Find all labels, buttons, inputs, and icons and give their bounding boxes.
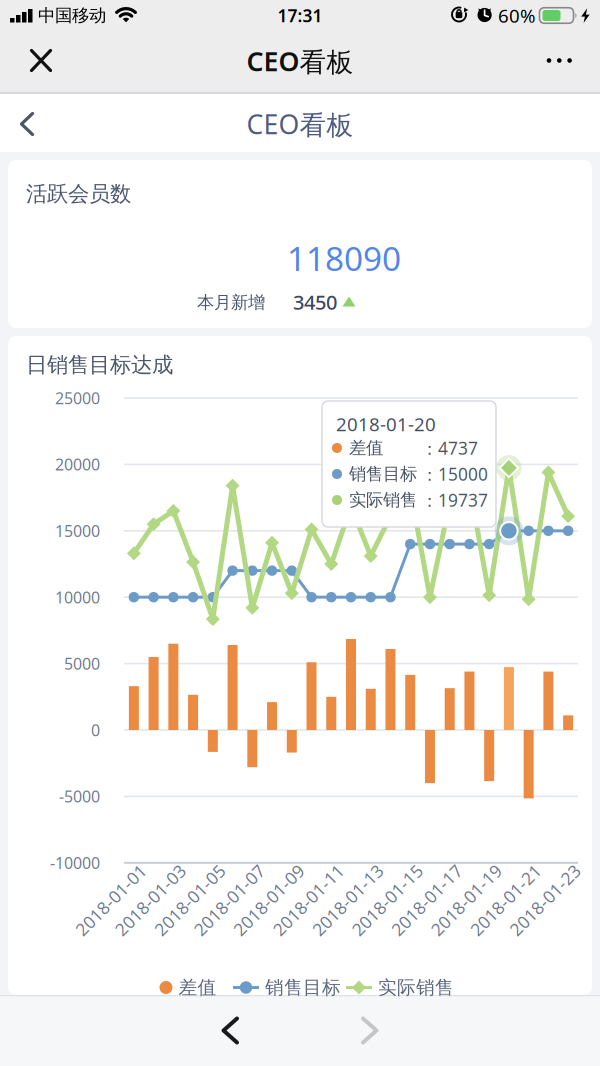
- staticText: 2018-01-19: [420, 888, 512, 911]
- staticText: 17:31: [277, 4, 322, 27]
- staticText: 实际销售: [378, 976, 454, 999]
- staticText: 2018-01-15: [341, 888, 433, 911]
- staticText: 2018-01-03: [104, 888, 196, 911]
- button[interactable]: Back: [7, 102, 47, 146]
- staticText: 2018-01-09: [223, 888, 315, 911]
- staticText: 2018-01-07: [183, 888, 275, 911]
- staticText: 销售目标: [265, 976, 341, 999]
- staticText: 销售目标: [349, 463, 417, 485]
- staticText: 20000: [55, 454, 100, 475]
- staticText: 活跃会员数: [26, 181, 131, 207]
- staticText: 日销售目标达成: [26, 352, 173, 378]
- button[interactable]: Forward: [340, 1000, 400, 1060]
- staticText: 60%: [498, 3, 536, 28]
- staticText: 2018-01-11: [262, 888, 354, 911]
- staticText: 2018-01-17: [381, 888, 473, 911]
- staticText: 本月新增: [197, 292, 265, 313]
- staticText: 2018-01-01: [65, 888, 157, 911]
- staticText: ：15000: [421, 462, 488, 485]
- button[interactable]: 实际销售: [346, 976, 454, 999]
- button[interactable]: 销售目标: [233, 976, 341, 999]
- staticText: 中国移动: [38, 5, 106, 26]
- staticText: 10000: [55, 587, 100, 608]
- staticText: -10000: [50, 852, 100, 873]
- staticText: 实际销售: [349, 489, 417, 511]
- staticText: 2018-01-23: [499, 888, 591, 911]
- button[interactable]: Back: [200, 1000, 260, 1060]
- staticText: -5000: [59, 786, 100, 807]
- staticText: 25000: [55, 387, 100, 409]
- staticText: CEO看板: [246, 106, 353, 142]
- staticText: 2018-01-20: [336, 412, 436, 436]
- staticText: ：4737: [421, 436, 478, 459]
- staticText: 15000: [55, 520, 100, 541]
- staticText: 3450: [293, 289, 337, 315]
- staticText: CEO看板: [246, 43, 353, 79]
- button[interactable]: More: [537, 38, 581, 82]
- staticText: ：19737: [421, 488, 488, 511]
- staticText: 118090: [287, 236, 401, 280]
- button[interactable]: 差值: [159, 976, 216, 999]
- staticText: 0: [91, 719, 100, 741]
- staticText: 2018-01-21: [460, 888, 552, 911]
- staticText: 2018-01-05: [144, 888, 236, 911]
- staticText: 2018-01-13: [302, 888, 394, 911]
- button[interactable]: Close: [19, 38, 63, 82]
- staticText: 差值: [178, 976, 216, 999]
- staticText: 5000: [64, 653, 100, 674]
- staticText: 差值: [349, 437, 383, 459]
